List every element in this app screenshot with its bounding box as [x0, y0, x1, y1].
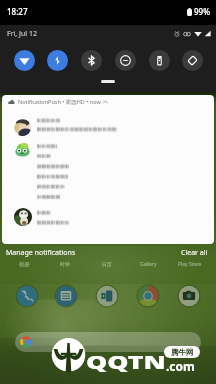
button[interactable]: Messages [55, 285, 77, 307]
staticText: 日历 [102, 261, 112, 267]
button[interactable]: Do not disturb [115, 50, 136, 71]
staticText: Play Store [178, 261, 202, 268]
button[interactable]: Google search [15, 332, 201, 352]
staticText: 相册 [19, 261, 29, 267]
button[interactable]: Phone [16, 285, 38, 307]
staticText: QQTN [86, 351, 166, 374]
staticText: 腾牛网 [171, 348, 194, 357]
staticText: Fri, Jul 12 [7, 29, 37, 39]
button[interactable]: Bluetooth [81, 50, 102, 71]
staticText: Gallery [140, 261, 157, 268]
staticText: 18:27 [7, 6, 28, 17]
staticText: Clear all [181, 248, 208, 258]
button[interactable]: Store [96, 285, 118, 307]
staticText: 99% [194, 6, 210, 17]
button[interactable]: Auto rotate [182, 50, 203, 71]
other: QQTN logo [51, 338, 86, 373]
staticText: .com [166, 358, 195, 374]
button[interactable]: Manage notifications [6, 248, 76, 258]
staticText: Manage notifications [6, 248, 76, 258]
staticText: 时钟 [60, 261, 70, 267]
button[interactable]: Chrome [137, 285, 159, 307]
button[interactable]: Flashlight [149, 50, 170, 71]
button[interactable]: Clear all [181, 248, 208, 258]
staticText: NotificationPush • 家园HD • now [18, 98, 101, 106]
button[interactable]: Mobile data [47, 50, 68, 71]
button[interactable]: NotificationPush • 家园HD • now [2, 95, 214, 244]
button[interactable]: Wi-Fi [14, 50, 35, 71]
button[interactable]: Camera [178, 285, 200, 307]
